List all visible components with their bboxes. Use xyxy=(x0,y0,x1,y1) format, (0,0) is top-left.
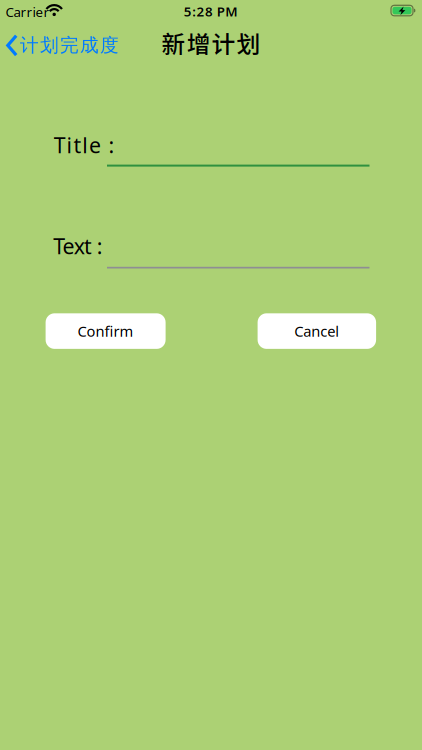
staticText: Text : xyxy=(53,232,103,260)
staticText: Confirm xyxy=(78,321,134,341)
staticText: 5:28 PM xyxy=(184,2,237,20)
staticText: 新 增 计 划 xyxy=(161,25,260,60)
staticText: Carrier xyxy=(5,3,49,21)
button[interactable]: Cancel xyxy=(258,313,376,349)
button[interactable]: 计 划 完 成 度 xyxy=(6,33,105,56)
staticText: 计 划 完 成 度 xyxy=(20,34,119,57)
staticText: Cancel xyxy=(294,321,339,341)
staticText: Title : xyxy=(54,131,115,159)
button[interactable]: Confirm xyxy=(46,313,166,349)
